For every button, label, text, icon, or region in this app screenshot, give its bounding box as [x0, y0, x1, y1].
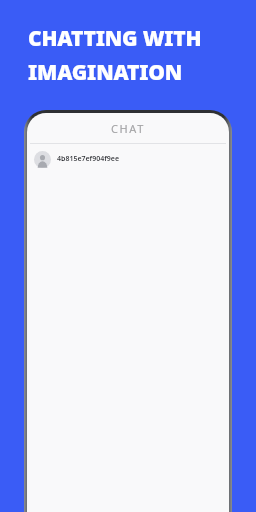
- staticText: CHAT: [111, 121, 145, 136]
- button[interactable]: 4b815e7ef904f9ee: [27, 144, 229, 174]
- staticText: 4b815e7ef904f9ee: [57, 154, 119, 164]
- staticText: CHATTING WITH: [28, 24, 202, 53]
- staticText: IMAGINATION: [28, 58, 183, 87]
